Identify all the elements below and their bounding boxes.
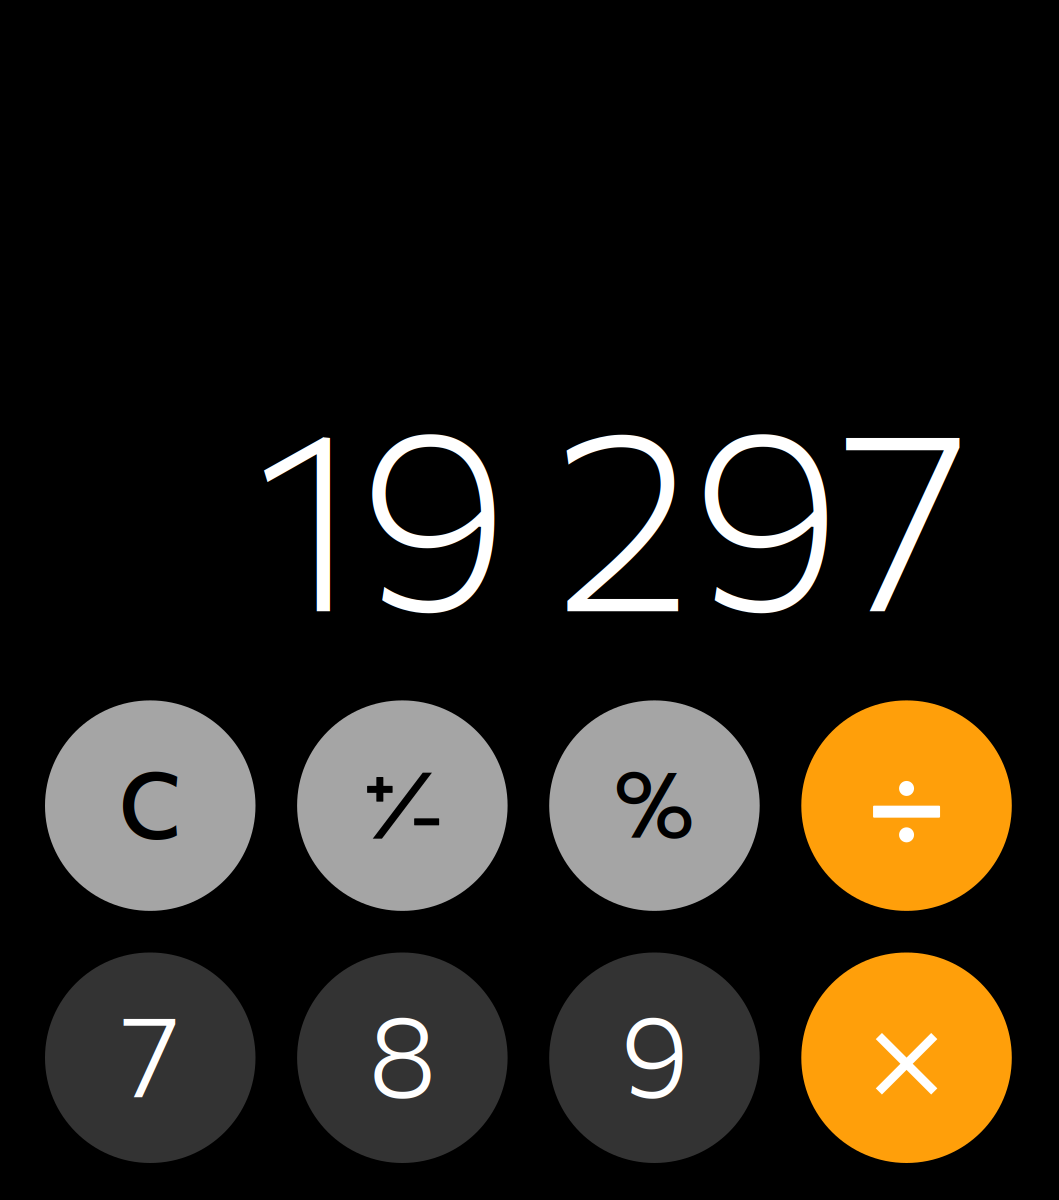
button[interactable]: 7 [45, 952, 255, 1163]
staticText: 19 297 [255, 355, 971, 663]
button[interactable]: Divide [801, 700, 1012, 911]
staticText: 7 [121, 982, 180, 1121]
staticText: C [119, 745, 182, 858]
button[interactable]: 8 [297, 952, 508, 1163]
button[interactable]: Multiply [801, 952, 1012, 1163]
staticText: 9 [620, 982, 688, 1121]
button[interactable]: % [549, 700, 760, 911]
staticText: 8 [368, 982, 436, 1121]
staticText: % [614, 747, 695, 856]
button[interactable]: 9 [549, 952, 760, 1163]
button[interactable]: C [45, 700, 255, 911]
button[interactable]: Plus minus [297, 700, 508, 911]
